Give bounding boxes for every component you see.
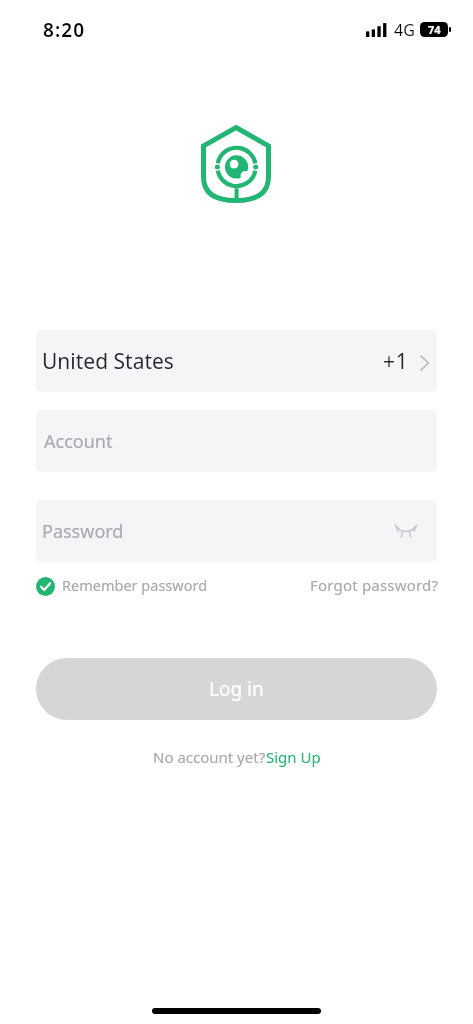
staticText: Password (42, 519, 124, 544)
button[interactable]: Password (36, 500, 437, 562)
staticText: 4G (394, 19, 415, 41)
button[interactable]: Sign Up (266, 747, 321, 767)
staticText: No account yet? (153, 747, 266, 767)
staticText: Remember password (62, 575, 208, 595)
staticText: United States (42, 347, 174, 376)
staticText: 74 (428, 22, 441, 37)
button[interactable]: Forgot password? (310, 575, 439, 595)
staticText: Log in (209, 676, 264, 702)
staticText: 8:20 (43, 17, 86, 43)
button[interactable]: Remember password (36, 575, 208, 595)
staticText: Account (44, 429, 113, 454)
button[interactable]: Account (36, 410, 437, 472)
staticText: +1 (383, 347, 409, 376)
button[interactable]: Log in (36, 658, 437, 720)
button[interactable]: United States (36, 330, 437, 392)
button[interactable]: Show password (389, 511, 423, 551)
